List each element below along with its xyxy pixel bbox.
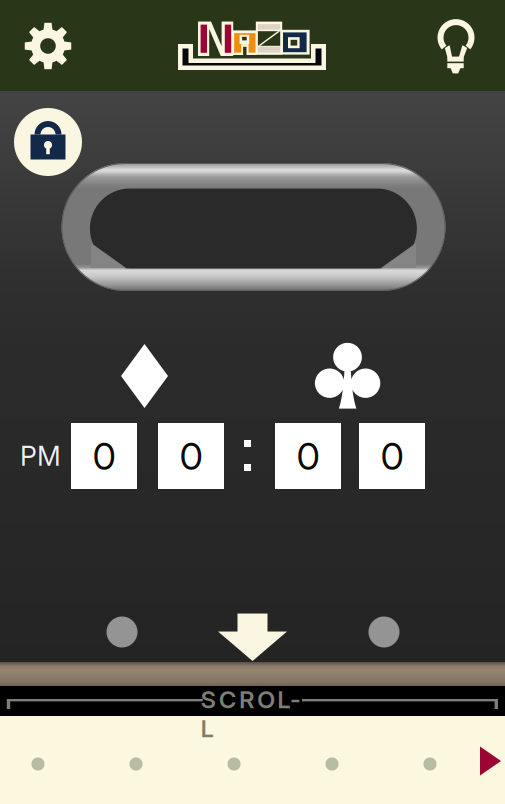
button[interactable]: 0 bbox=[0, 0, 505, 804]
staticText: 0 bbox=[179, 433, 202, 479]
staticText: 0 bbox=[92, 433, 115, 479]
button[interactable]: 0 bbox=[0, 0, 505, 804]
button[interactable]: Next bbox=[0, 0, 505, 804]
button[interactable]: Hint bbox=[0, 0, 505, 804]
button[interactable]: 0 bbox=[0, 0, 505, 804]
staticText: 0 bbox=[296, 433, 319, 479]
button[interactable]: Scroll down bbox=[0, 0, 505, 804]
button[interactable]: Settings bbox=[0, 0, 505, 804]
staticText: 0 bbox=[380, 433, 403, 479]
staticText: SCROLL bbox=[200, 685, 305, 714]
staticText: PM bbox=[20, 440, 61, 472]
button[interactable]: 0 bbox=[0, 0, 505, 804]
